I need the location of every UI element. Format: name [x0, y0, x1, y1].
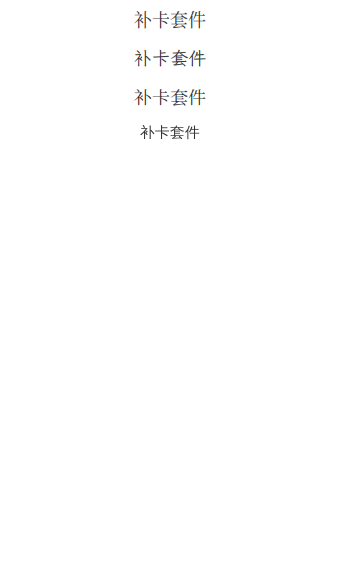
staticText: 补卡套件	[140, 123, 200, 141]
staticText: 补卡套件	[134, 6, 206, 32]
staticText: 补卡套件	[134, 46, 206, 70]
staticText: 补卡套件	[134, 84, 206, 109]
